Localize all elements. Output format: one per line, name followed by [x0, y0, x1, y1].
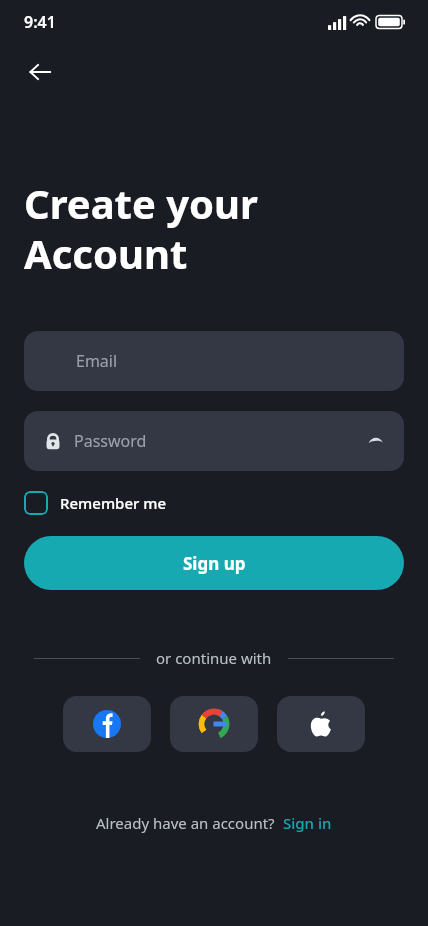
staticText: Remember me: [60, 493, 167, 513]
staticText: Password: [74, 430, 147, 452]
staticText: Create your Account: [24, 176, 258, 281]
button[interactable]: Show password: [356, 421, 396, 461]
button[interactable]: Remember me: [24, 491, 167, 515]
staticText: Already have an account?: [96, 813, 275, 833]
button[interactable]: Sign up with Apple: [277, 696, 365, 752]
staticText: 9:41: [24, 11, 56, 33]
button[interactable]: Sign up: [24, 536, 404, 590]
button[interactable]: Sign in: [283, 813, 332, 833]
button[interactable]: Email: [24, 331, 404, 391]
button[interactable]: Sign up with Facebook: [63, 696, 151, 752]
button[interactable]: Password: [24, 411, 404, 471]
staticText: Sign in: [283, 813, 332, 833]
staticText: Sign up: [183, 552, 246, 575]
button[interactable]: Back: [20, 52, 60, 92]
staticText: or continue with: [156, 648, 272, 668]
button[interactable]: Sign up with Google: [170, 696, 258, 752]
staticText: Email: [76, 350, 118, 372]
